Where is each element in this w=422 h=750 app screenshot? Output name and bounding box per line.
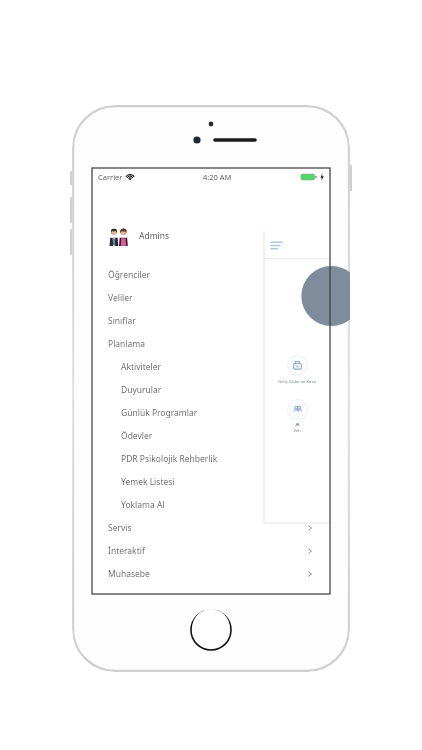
staticText: Duyurular — [121, 384, 162, 396]
staticText: Muhasebe — [108, 568, 150, 580]
staticText: PDR Psikolojik Rehberlik — [121, 453, 218, 465]
staticText: Servis — [108, 522, 132, 534]
button[interactable]: Öğrenciler — [92, 263, 330, 286]
staticText: Ödevler — [121, 430, 153, 442]
button[interactable]: Aktiviteler — [92, 355, 330, 378]
button[interactable]: Sınıflar — [92, 309, 330, 332]
staticText: Yoklama Al — [121, 499, 165, 511]
staticText: 4:20 AM — [203, 172, 232, 182]
staticText: İnteraktif — [108, 545, 145, 557]
button[interactable]: Yemek Listesi — [92, 470, 330, 493]
button[interactable]: PDR Psikolojik Rehberlik — [92, 447, 330, 470]
button[interactable]: Muhasebe — [92, 562, 330, 585]
staticText: Yemek Listesi — [121, 476, 175, 488]
button[interactable]: Günlük Programlar — [92, 401, 330, 424]
button[interactable]: Veli — [264, 399, 330, 434]
button[interactable]: Gelir, Gider ve Kasa — [264, 355, 330, 385]
button[interactable]: Ödevler — [92, 424, 330, 447]
button[interactable]: Admins — [108, 223, 330, 249]
button[interactable]: Servis — [92, 516, 330, 539]
staticText: Aktiviteler — [121, 361, 162, 373]
staticText: Veli — [264, 428, 330, 434]
staticText: Gelir, Gider ve Kasa — [264, 379, 330, 385]
button[interactable]: İnteraktif — [92, 539, 330, 562]
button[interactable]: Planlama — [92, 332, 330, 355]
staticText: Veliler — [108, 292, 133, 304]
button[interactable]: Veliler — [92, 286, 330, 309]
button[interactable]: Duyurular — [92, 378, 330, 401]
staticText: Carrier — [98, 172, 123, 182]
staticText: Günlük Programlar — [121, 407, 198, 419]
staticText: Planlama — [108, 338, 146, 350]
staticText: Admins — [139, 230, 170, 242]
button[interactable]: Yoklama Al — [92, 493, 330, 516]
other: Menu — [271, 241, 282, 250]
staticText: Öğrenciler — [108, 269, 151, 281]
staticText: Sınıflar — [108, 315, 136, 327]
